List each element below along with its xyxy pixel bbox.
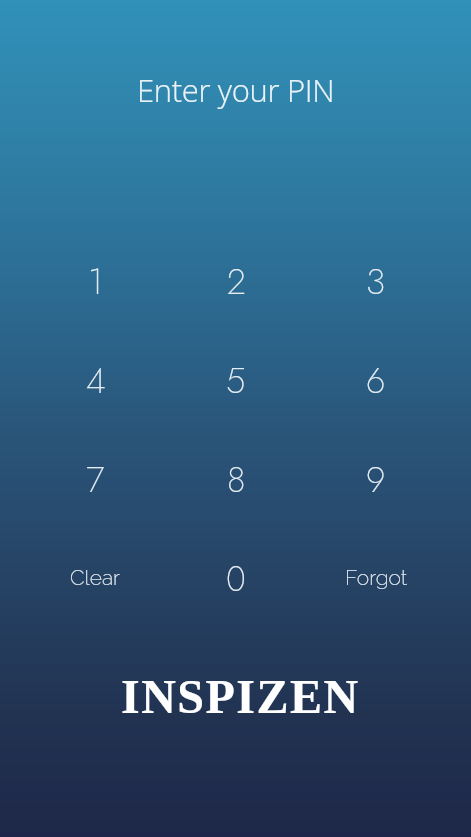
button[interactable]: 3 [306,233,446,332]
button[interactable]: 1 [25,233,166,332]
staticText: 6 [366,356,386,407]
staticText: 3 [366,257,386,308]
button[interactable]: 8 [166,431,306,530]
staticText: Clear [70,565,121,590]
staticText: 4 [86,356,106,407]
staticText: 0 [226,554,246,605]
button[interactable]: 9 [306,431,446,530]
button[interactable]: 4 [25,332,166,431]
button[interactable]: 5 [166,332,306,431]
staticText: 1 [88,257,103,308]
staticText: Enter your PIN [137,69,335,111]
button[interactable]: Clear [25,530,166,629]
staticText: 2 [227,257,246,308]
staticText: INSPIZEN [121,670,360,723]
staticText: 8 [227,455,246,506]
button[interactable]: 7 [25,431,166,530]
button[interactable]: 0 [166,530,306,629]
staticText: 9 [366,455,386,506]
button[interactable]: Forgot [306,530,446,629]
staticText: Forgot [345,565,408,590]
staticText: 7 [86,455,105,506]
staticText: 5 [226,356,246,407]
button[interactable]: 6 [306,332,446,431]
button[interactable]: 2 [166,233,306,332]
